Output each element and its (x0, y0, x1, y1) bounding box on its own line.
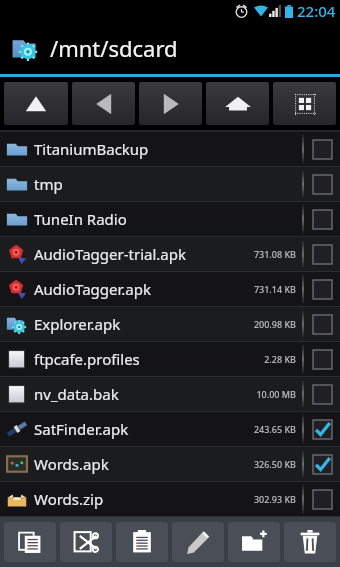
button[interactable]: Select AudioTagger-trial.apk (304, 237, 340, 271)
button[interactable]: Forward (139, 82, 202, 125)
button[interactable]: Select Words.apk (304, 447, 340, 481)
staticText: Words.zip (34, 489, 253, 509)
button[interactable]: Select AudioTagger.apk (304, 272, 340, 306)
button[interactable]: Up (4, 82, 68, 125)
button[interactable]: Delete (284, 522, 336, 562)
staticText: Words.apk (34, 454, 253, 474)
button[interactable]: View mode (273, 82, 336, 125)
staticText: Explorer.apk (34, 314, 253, 334)
staticText: 326.50 KB (253, 458, 296, 470)
staticText: TuneIn Radio (34, 209, 296, 229)
button[interactable]: Words.zip (0, 482, 340, 516)
staticText: nv_data.bak (34, 384, 256, 404)
staticText: AudioTagger.apk (34, 279, 253, 299)
staticText: 2.28 KB (264, 353, 296, 365)
button[interactable]: TitaniumBackup (0, 132, 340, 166)
button[interactable]: Select ftpcafe.profiles (304, 342, 340, 376)
staticText: 10.00 MB (256, 388, 296, 400)
button[interactable]: AudioTagger.apk (0, 272, 340, 306)
button[interactable]: Select nv_data.bak (304, 377, 340, 411)
staticText: AudioTagger-trial.apk (34, 244, 253, 264)
button[interactable]: Select Words.zip (304, 482, 340, 516)
button[interactable]: TuneIn Radio (0, 202, 340, 236)
button[interactable]: Cut (60, 522, 112, 562)
button[interactable]: Explorer.apk (0, 307, 340, 341)
staticText: 302.93 KB (253, 493, 296, 505)
button[interactable]: AudioTagger-trial.apk (0, 237, 340, 271)
button[interactable]: Copy (4, 522, 56, 562)
staticText: SatFinder.apk (34, 419, 253, 439)
staticText: 731.08 KB (253, 248, 296, 260)
button[interactable]: Select SatFinder.apk (304, 412, 340, 446)
staticText: 200.98 KB (253, 318, 296, 330)
button[interactable]: New folder (228, 522, 280, 562)
button[interactable]: Home (206, 82, 269, 125)
staticText: TitaniumBackup (34, 139, 296, 159)
button[interactable]: Rename (172, 522, 224, 562)
staticText: ftpcafe.profiles (34, 349, 264, 369)
button[interactable]: Select tmp (304, 167, 340, 201)
button[interactable]: Select TuneIn Radio (304, 202, 340, 236)
staticText: 243.65 KB (253, 423, 296, 435)
button[interactable]: Select Explorer.apk (304, 307, 340, 341)
staticText: 22:04 (297, 1, 336, 21)
staticText: 731.14 KB (253, 283, 296, 295)
button[interactable]: nv_data.bak (0, 377, 340, 411)
button[interactable]: Words.apk (0, 447, 340, 481)
button[interactable]: tmp (0, 167, 340, 201)
button[interactable]: SatFinder.apk (0, 412, 340, 446)
button[interactable]: Select TitaniumBackup (304, 132, 340, 166)
staticText: /mnt/sdcard (50, 33, 178, 63)
button[interactable]: ftpcafe.profiles (0, 342, 340, 376)
button[interactable]: /mnt/sdcard (0, 22, 340, 74)
button[interactable]: Paste (116, 522, 168, 562)
staticText: tmp (34, 174, 296, 194)
button[interactable]: Back (72, 82, 135, 125)
